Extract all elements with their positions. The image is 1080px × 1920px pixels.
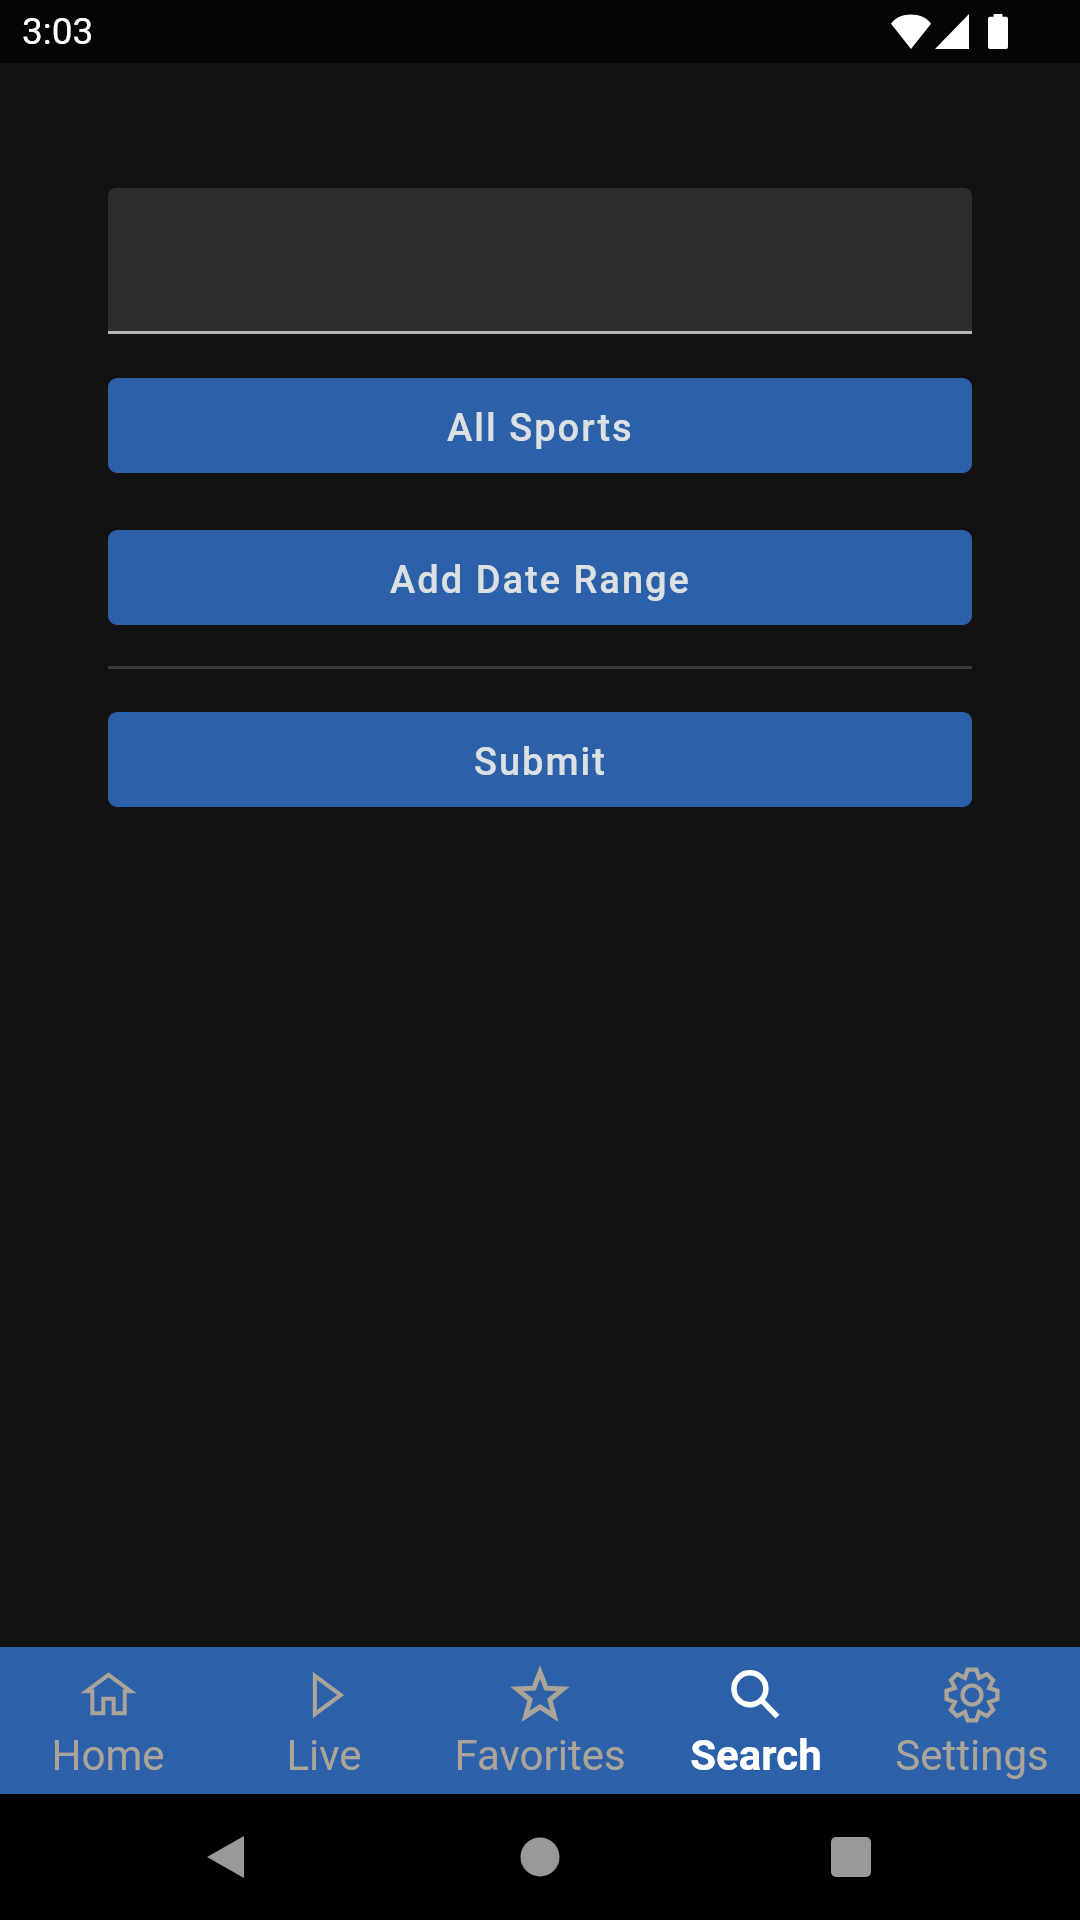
staticText: All Sports bbox=[447, 406, 634, 451]
staticText: Search bbox=[690, 1731, 822, 1780]
button[interactable]: Home bbox=[360, 1794, 720, 1920]
button[interactable]: Recent apps bbox=[720, 1794, 1080, 1920]
button[interactable]: Live bbox=[216, 1647, 432, 1794]
staticText: 3:03 bbox=[22, 10, 94, 53]
button[interactable]: All Sports bbox=[108, 378, 972, 473]
button[interactable]: Back bbox=[0, 1794, 360, 1920]
staticText: Settings bbox=[895, 1731, 1049, 1780]
button[interactable]: Add Date Range bbox=[108, 530, 972, 625]
button[interactable]: Favorites bbox=[432, 1647, 648, 1794]
button[interactable]: Search text field bbox=[108, 188, 972, 334]
staticText: Favorites bbox=[454, 1731, 626, 1780]
button[interactable]: Settings bbox=[864, 1647, 1080, 1794]
staticText: Home bbox=[51, 1731, 165, 1780]
button[interactable]: Submit bbox=[108, 712, 972, 807]
button[interactable]: Search bbox=[648, 1647, 864, 1794]
staticText: Submit bbox=[474, 740, 607, 785]
staticText: Live bbox=[286, 1731, 362, 1780]
button[interactable]: Home bbox=[0, 1647, 216, 1794]
staticText: Add Date Range bbox=[390, 558, 691, 603]
